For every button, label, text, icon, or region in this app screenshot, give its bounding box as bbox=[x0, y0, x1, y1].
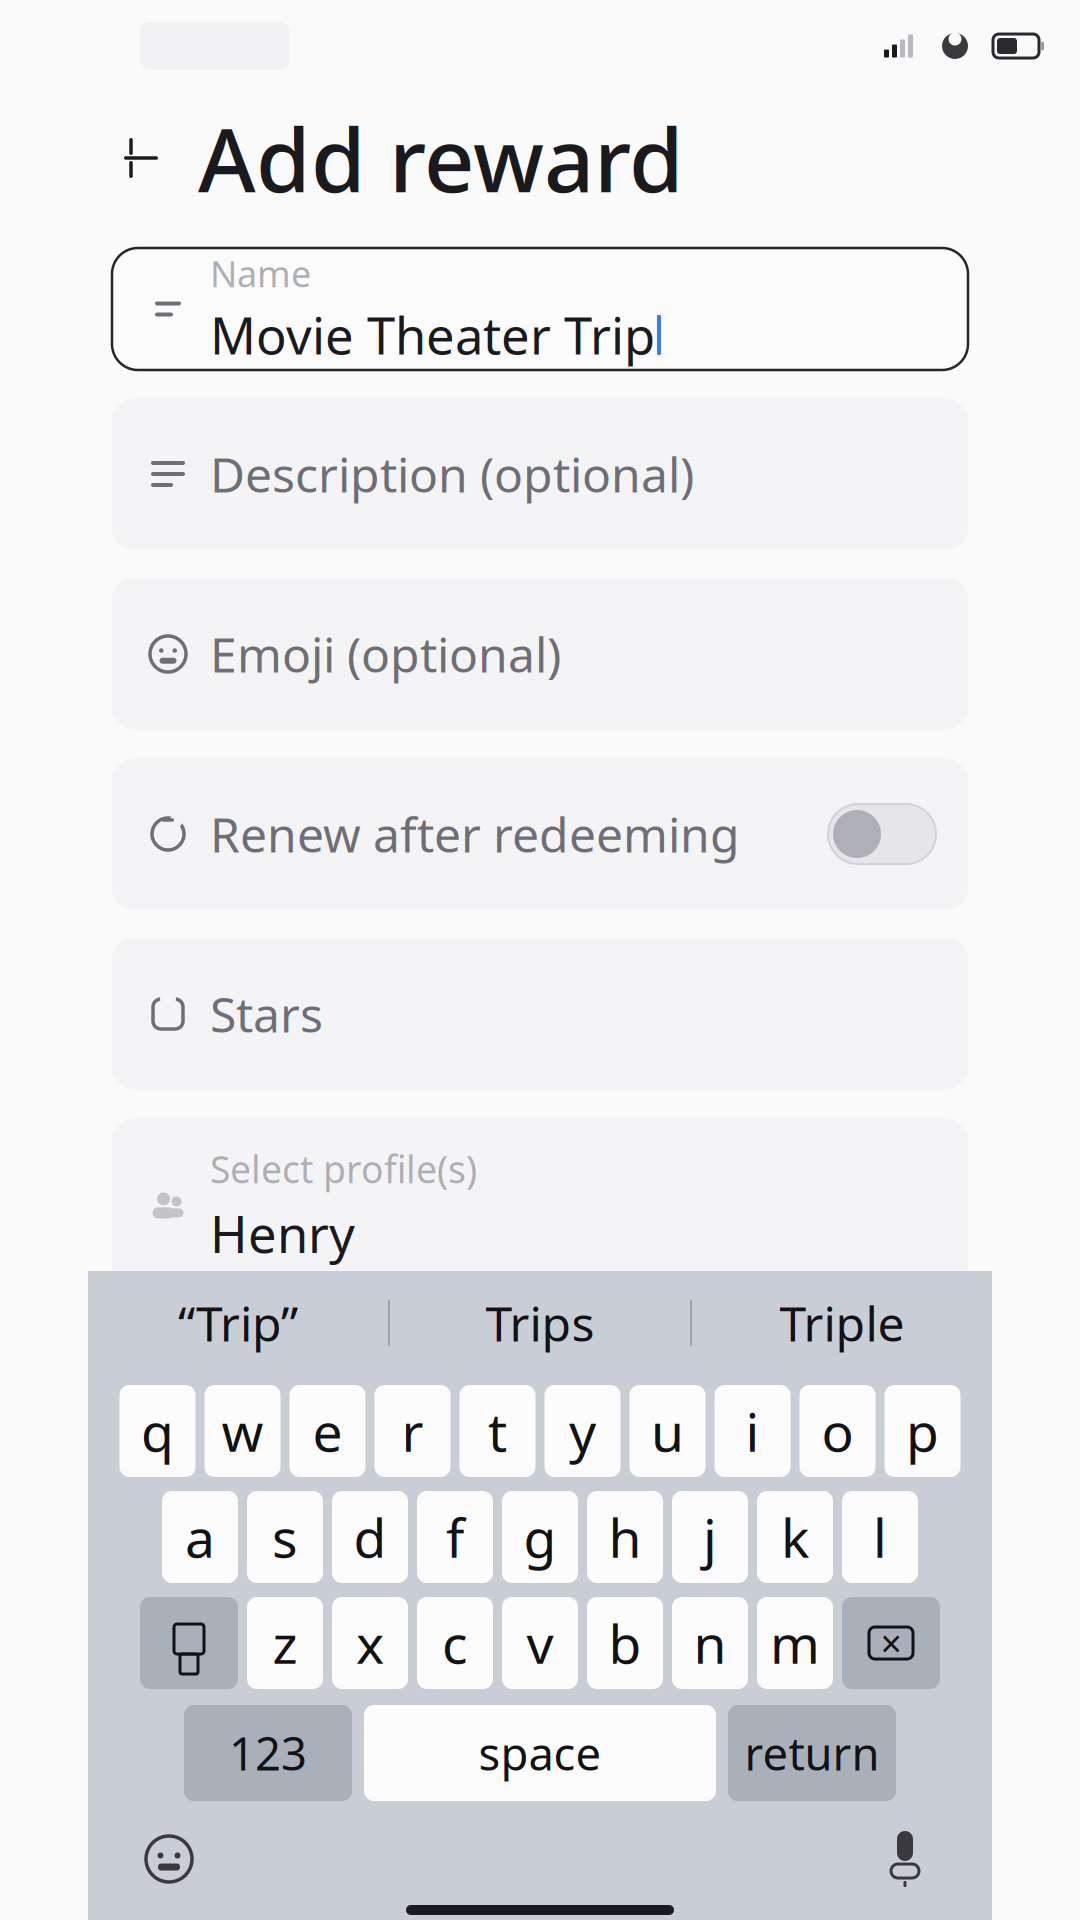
button[interactable]: t bbox=[459, 1385, 535, 1477]
staticText: Movie Theater Trip bbox=[210, 301, 655, 369]
button[interactable]: g bbox=[502, 1491, 578, 1583]
staticText: h bbox=[608, 1502, 641, 1572]
button[interactable]: k bbox=[757, 1491, 833, 1583]
staticText: m bbox=[770, 1608, 820, 1678]
button[interactable]: Trips bbox=[390, 1275, 690, 1371]
staticText: f bbox=[446, 1502, 464, 1572]
button[interactable]: Triple bbox=[692, 1275, 992, 1371]
button[interactable]: 123 bbox=[184, 1705, 352, 1801]
button[interactable]: q bbox=[119, 1385, 195, 1477]
button[interactable]: a bbox=[162, 1491, 238, 1583]
staticText: s bbox=[272, 1502, 298, 1572]
button[interactable]: x bbox=[332, 1597, 408, 1689]
button[interactable]: Back bbox=[112, 129, 170, 187]
staticText: b bbox=[608, 1608, 641, 1678]
button[interactable]: v bbox=[502, 1597, 578, 1689]
button[interactable]: l bbox=[842, 1491, 918, 1583]
staticText: d bbox=[353, 1502, 386, 1572]
button[interactable]: d bbox=[332, 1491, 408, 1583]
staticText: k bbox=[781, 1502, 809, 1572]
button[interactable]: space bbox=[364, 1705, 716, 1801]
button[interactable]: Delete bbox=[842, 1597, 940, 1689]
button[interactable]: w bbox=[204, 1385, 280, 1477]
staticText: a bbox=[185, 1502, 215, 1572]
staticText: w bbox=[221, 1396, 263, 1466]
staticText: i bbox=[745, 1396, 759, 1466]
button[interactable]: o bbox=[799, 1385, 875, 1477]
button[interactable]: Emoji keyboard bbox=[134, 1824, 204, 1894]
staticText: l bbox=[873, 1502, 887, 1572]
staticText: y bbox=[569, 1396, 596, 1466]
staticText: j bbox=[703, 1502, 717, 1572]
staticText: Stars bbox=[210, 982, 323, 1046]
staticText: Renew after redeeming bbox=[210, 802, 740, 866]
staticText: Henry bbox=[210, 1200, 355, 1267]
staticText: t bbox=[488, 1396, 507, 1466]
button[interactable]: f bbox=[417, 1491, 493, 1583]
button[interactable]: m bbox=[757, 1597, 833, 1689]
button[interactable]: j bbox=[672, 1491, 748, 1583]
button[interactable]: b bbox=[587, 1597, 663, 1689]
staticText: p bbox=[906, 1396, 939, 1466]
button[interactable]: r bbox=[374, 1385, 450, 1477]
staticText: Add reward bbox=[198, 100, 684, 216]
button[interactable]: y bbox=[544, 1385, 620, 1477]
staticText: v bbox=[526, 1608, 553, 1678]
staticText: Emoji (optional) bbox=[210, 622, 561, 686]
staticText: x bbox=[356, 1608, 384, 1678]
button[interactable]: Select profile(s) bbox=[112, 1118, 968, 1294]
staticText: o bbox=[821, 1396, 853, 1466]
staticText: g bbox=[523, 1502, 556, 1572]
button[interactable]: Stars bbox=[112, 938, 968, 1090]
staticText: Description (optional) bbox=[210, 442, 694, 506]
staticText: Name bbox=[210, 249, 311, 297]
button[interactable]: Emoji (optional) bbox=[112, 578, 968, 730]
staticText: r bbox=[401, 1396, 423, 1466]
staticText: Trips bbox=[485, 1291, 594, 1355]
staticText: n bbox=[693, 1608, 726, 1678]
staticText: × bbox=[880, 1618, 901, 1668]
button[interactable]: Description (optional) bbox=[112, 398, 968, 550]
button[interactable]: Dictation bbox=[870, 1821, 940, 1897]
staticText: Triple bbox=[779, 1291, 904, 1355]
button[interactable]: n bbox=[672, 1597, 748, 1689]
button[interactable]: Shift bbox=[140, 1597, 238, 1689]
staticText: z bbox=[272, 1608, 297, 1678]
button[interactable]: Name bbox=[112, 248, 968, 370]
staticText: 123 bbox=[229, 1723, 307, 1783]
button[interactable]: z bbox=[247, 1597, 323, 1689]
staticText: e bbox=[312, 1396, 342, 1466]
button[interactable]: Renew after redeeming bbox=[112, 758, 968, 910]
staticText: u bbox=[651, 1396, 684, 1466]
staticText: “Trip” bbox=[178, 1291, 298, 1355]
button[interactable]: c bbox=[417, 1597, 493, 1689]
button[interactable]: return bbox=[728, 1705, 896, 1801]
button[interactable]: s bbox=[247, 1491, 323, 1583]
button[interactable]: u bbox=[629, 1385, 705, 1477]
staticText: q bbox=[141, 1396, 174, 1466]
button[interactable]: “Trip” bbox=[88, 1275, 388, 1371]
button[interactable]: e bbox=[289, 1385, 365, 1477]
staticText: c bbox=[442, 1608, 468, 1678]
staticText: return bbox=[744, 1723, 879, 1783]
button[interactable]: i bbox=[714, 1385, 790, 1477]
button[interactable]: h bbox=[587, 1491, 663, 1583]
staticText: Select profile(s) bbox=[210, 1144, 477, 1194]
button[interactable]: p bbox=[884, 1385, 960, 1477]
staticText: space bbox=[478, 1723, 601, 1783]
